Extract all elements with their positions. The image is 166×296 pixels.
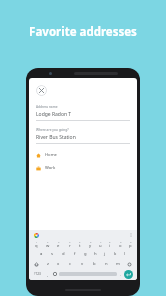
staticText: 0 (130, 240, 132, 243)
staticText: y (89, 243, 92, 249)
button[interactable]: b (88, 259, 100, 269)
button[interactable]: k (110, 249, 120, 259)
button[interactable]: Shift (31, 259, 42, 269)
staticText: j (104, 251, 106, 257)
staticText: 4 (69, 240, 71, 243)
staticText: x (57, 261, 60, 267)
button[interactable]: g (80, 249, 90, 259)
staticText: , (47, 272, 49, 277)
button[interactable]: Home (36, 152, 130, 158)
button[interactable]: h (90, 249, 100, 259)
button[interactable]: Address name (36, 105, 130, 121)
button[interactable]: x (53, 259, 64, 269)
staticText: . (120, 272, 122, 277)
button[interactable]: Close (36, 85, 47, 96)
staticText: 6 (90, 240, 92, 243)
button[interactable]: 5 (75, 239, 85, 249)
button[interactable]: Enter (124, 270, 133, 279)
staticText: n (105, 261, 108, 267)
staticText: 5 (79, 240, 81, 243)
staticText: Where are you going? (36, 128, 69, 132)
button[interactable]: ?123 (31, 269, 44, 279)
button[interactable]: 8 (105, 239, 115, 249)
staticText: h (94, 251, 97, 257)
staticText: s (51, 251, 54, 257)
button[interactable]: n (100, 259, 112, 269)
staticText: 2 (47, 240, 49, 243)
button[interactable]: j (100, 249, 110, 259)
staticText: Home (45, 152, 57, 158)
button[interactable]: m (112, 259, 124, 269)
button[interactable]: v (76, 259, 88, 269)
button[interactable]: 3 (53, 239, 64, 249)
button[interactable]: 0 (125, 239, 135, 249)
staticText: u (99, 243, 102, 249)
button[interactable]: 4 (64, 239, 75, 249)
staticText: b (93, 261, 96, 267)
staticText: r (69, 243, 71, 249)
staticText: c (69, 261, 72, 267)
staticText: k (114, 251, 117, 257)
staticText: z (47, 261, 49, 267)
button[interactable]: 1 (31, 239, 42, 249)
staticText: ?123 (34, 272, 41, 276)
staticText: e (57, 243, 60, 249)
button[interactable]: Work (36, 165, 130, 171)
button[interactable]: l (120, 249, 130, 259)
button[interactable]: a (36, 249, 47, 259)
button[interactable]: s (47, 249, 58, 259)
button[interactable]: f (69, 249, 80, 259)
button[interactable]: d (58, 249, 69, 259)
button[interactable]: Backspace (124, 259, 135, 269)
staticText: w (46, 243, 50, 249)
staticText: 9 (120, 240, 122, 243)
button[interactable]: 9 (115, 239, 125, 249)
button[interactable]: Where are you going? (36, 128, 130, 144)
staticText: Favorite addresses (0, 24, 166, 40)
staticText: a (40, 251, 43, 257)
staticText: l (124, 251, 126, 257)
staticText: v (81, 261, 84, 267)
staticText: q (35, 243, 38, 249)
button[interactable]: c (64, 259, 76, 269)
staticText: Work (45, 165, 56, 171)
button[interactable]: z (42, 259, 53, 269)
staticText: g (84, 251, 87, 257)
button[interactable]: , (44, 269, 51, 279)
staticText: m (116, 261, 120, 267)
button[interactable]: 2 (42, 239, 53, 249)
staticText: 1 (36, 240, 38, 243)
button[interactable]: 6 (85, 239, 95, 249)
staticText: t (79, 243, 81, 249)
staticText: 3 (58, 240, 60, 243)
staticText: o (119, 243, 122, 249)
staticText: Address name (36, 105, 58, 109)
staticText: Lodge Radon T (36, 111, 72, 118)
staticText: 7 (100, 240, 102, 243)
button[interactable]: . (117, 269, 124, 279)
button[interactable]: Emoji (51, 269, 59, 279)
staticText: i (109, 243, 111, 249)
staticText: d (62, 251, 65, 257)
staticText: 8 (109, 240, 111, 243)
staticText: f (74, 251, 76, 257)
button[interactable]: Google (33, 232, 39, 238)
button[interactable]: 7 (95, 239, 105, 249)
staticText: River Bus Station (36, 134, 76, 141)
button[interactable]: More options (128, 232, 133, 237)
staticText: p (129, 243, 132, 249)
